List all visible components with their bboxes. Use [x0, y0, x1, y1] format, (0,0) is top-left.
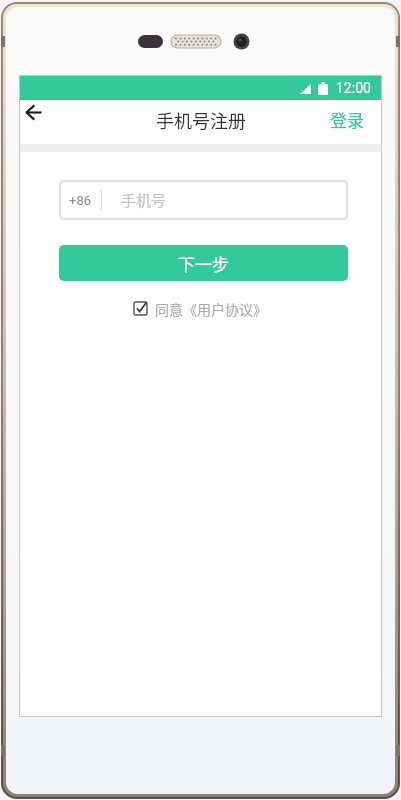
staticText: 12:00	[336, 80, 371, 96]
button[interactable]: 下一步	[59, 245, 348, 281]
staticText: 登录	[330, 107, 364, 131]
button[interactable]	[21, 100, 57, 124]
staticText: 手机号	[121, 189, 167, 211]
button[interactable]: 登录	[323, 107, 371, 131]
button[interactable]: +86	[59, 180, 348, 220]
button[interactable]: 同意《用户协议》	[19, 299, 382, 317]
staticText: 下一步	[178, 251, 229, 276]
staticText: +86	[69, 193, 91, 208]
staticText: 同意《用户协议》	[155, 299, 267, 317]
staticText: 手机号注册	[156, 107, 246, 133]
